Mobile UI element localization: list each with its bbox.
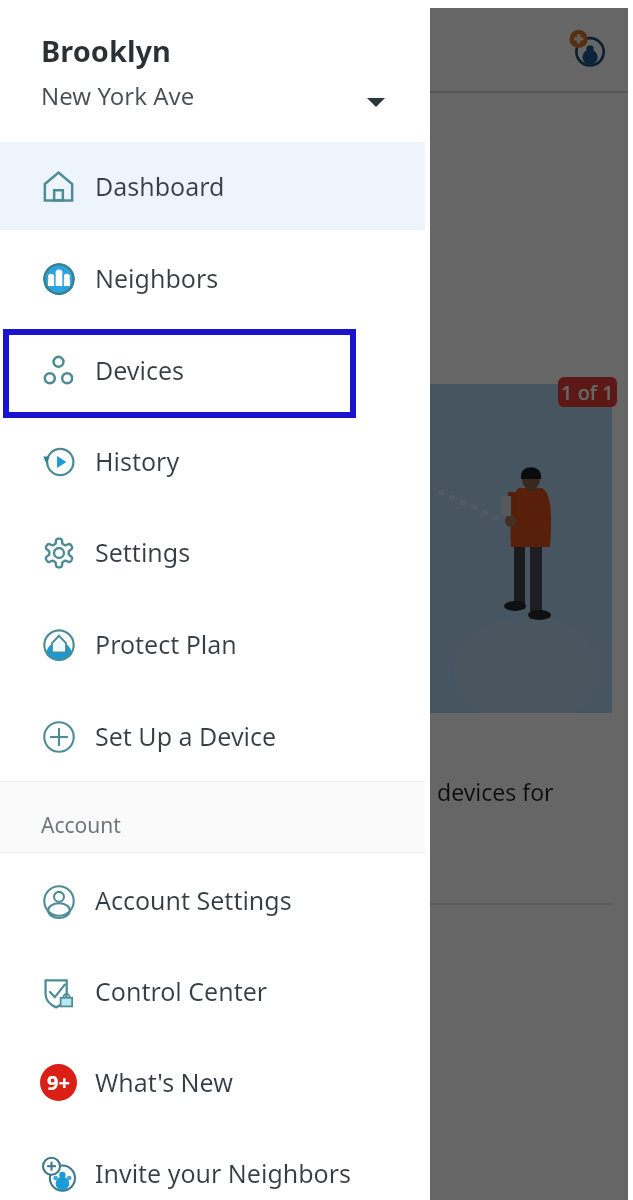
button[interactable] xyxy=(430,384,612,713)
button[interactable]: 9+ xyxy=(0,1038,430,1126)
staticText: Neighbors xyxy=(95,261,219,295)
button[interactable]: Change location xyxy=(352,78,400,126)
staticText: Dashboard xyxy=(95,169,225,203)
button[interactable]: Control Center xyxy=(0,947,430,1035)
staticText: Brooklyn xyxy=(41,31,171,70)
staticText: Account Settings xyxy=(95,883,292,917)
button[interactable]: Dashboard xyxy=(0,142,430,230)
button[interactable]: Set Up a Device xyxy=(0,692,430,780)
staticText: 9+ xyxy=(47,1069,70,1096)
staticText: Control Center xyxy=(95,974,268,1008)
staticText: New York Ave xyxy=(41,79,195,112)
button[interactable]: Protect Plan xyxy=(0,600,430,688)
staticText: Protect Plan xyxy=(95,627,237,661)
button[interactable]: Account Settings xyxy=(0,856,430,944)
button[interactable]: Neighbors xyxy=(0,234,430,322)
staticText: Account xyxy=(41,811,121,840)
staticText: History xyxy=(95,444,180,478)
staticText: Set Up a Device xyxy=(95,719,277,753)
staticText: Devices xyxy=(95,353,185,387)
staticText: 1 of 1 xyxy=(561,379,614,406)
button[interactable]: Invite neighbors xyxy=(565,26,609,70)
staticText: Settings xyxy=(95,535,191,569)
button[interactable]: History xyxy=(0,417,430,505)
staticText: Invite your Neighbors xyxy=(95,1156,352,1190)
button[interactable]: Devices xyxy=(0,326,430,414)
button[interactable]: 1 of 1 xyxy=(558,377,617,407)
staticText: What's New xyxy=(95,1065,233,1099)
staticText: devices for xyxy=(437,776,554,807)
button[interactable]: Settings xyxy=(0,508,430,596)
button[interactable]: Invite your Neighbors xyxy=(0,1129,430,1200)
